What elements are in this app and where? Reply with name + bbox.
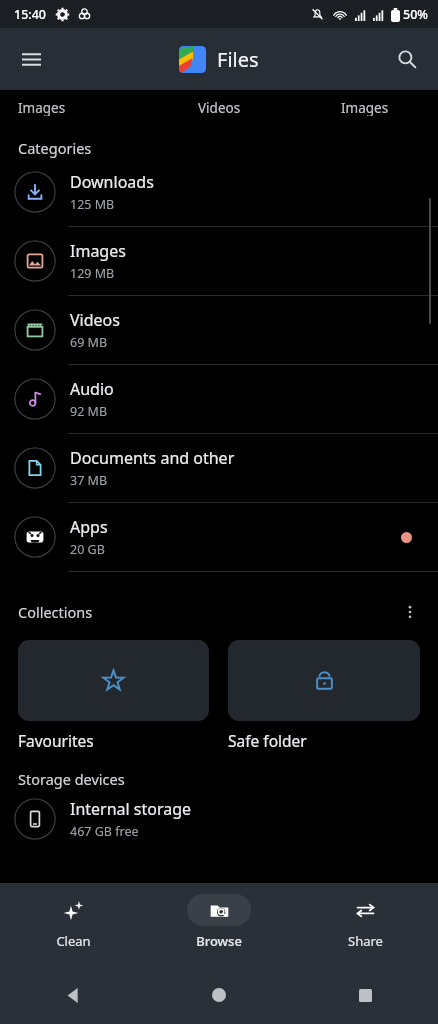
button[interactable]: Internal storage [0,789,438,849]
staticText: Share [348,932,383,950]
staticText: 129 MB [70,265,115,282]
staticText: 125 MB [70,196,115,213]
staticText: Images [341,99,389,116]
staticText: 20 GB [70,541,105,558]
staticText: Apps [70,516,108,538]
button[interactable]: Videos [146,90,292,116]
staticText: Browse [196,932,242,950]
staticText: Safe folder [228,730,307,751]
staticText: 69 MB [70,334,108,351]
button[interactable]: Documents and other [0,434,438,502]
button[interactable]: Images [0,227,438,295]
staticText: Images [18,99,66,116]
staticText: 467 GB free [70,823,139,840]
staticText: 50% [403,6,428,23]
button[interactable]: Recent apps [292,966,438,1024]
button[interactable]: Audio [0,365,438,433]
staticText: Videos [70,309,120,331]
button[interactable]: Downloads [0,158,438,226]
staticText: Collections [18,602,390,622]
button[interactable] [18,640,209,721]
button[interactable]: Clean [0,883,146,966]
button[interactable]: Images [0,90,146,116]
staticText: 37 MB [70,472,108,489]
button[interactable]: Images [292,90,438,116]
staticText: 15:40 [14,6,47,23]
button[interactable] [228,640,420,721]
button[interactable]: Back [0,966,146,1024]
staticText: Documents and other [70,447,235,469]
button[interactable]: Browse [146,883,292,966]
staticText: Storage devices [18,769,125,789]
staticText: Images [70,240,126,262]
staticText: Audio [70,378,114,400]
staticText: 92 MB [70,403,108,420]
staticText: Videos [198,99,241,116]
button[interactable]: Apps [0,503,438,571]
staticText: Clean [56,932,91,950]
button[interactable]: Videos [0,296,438,364]
button[interactable]: More options [390,592,430,632]
button[interactable]: Open navigation menu [8,36,54,82]
staticText: Internal storage [70,798,192,820]
staticText: Favourites [18,730,94,751]
button[interactable]: Share [292,883,438,966]
button[interactable]: Home [146,966,292,1024]
staticText: Files [217,46,259,73]
button[interactable]: Search [384,36,430,82]
staticText: Downloads [70,171,154,193]
staticText: Categories [18,138,92,158]
